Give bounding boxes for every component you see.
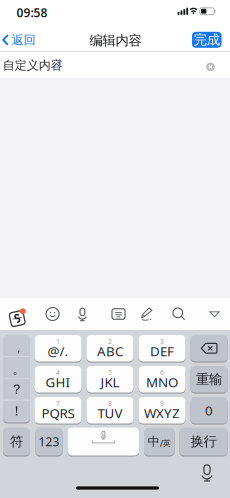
staticText: 自定义内容	[3, 58, 63, 73]
staticText: 2	[108, 337, 112, 346]
button[interactable]: 4	[34, 365, 81, 393]
button[interactable]: 0	[190, 396, 227, 424]
button[interactable]: 。	[3, 357, 30, 378]
staticText: 123	[38, 433, 59, 449]
staticText: DEF	[150, 342, 174, 360]
button[interactable]: 空格	[67, 427, 139, 456]
staticText: 换行	[190, 433, 216, 450]
button[interactable]: 8	[86, 396, 133, 424]
staticText: 7	[56, 399, 60, 408]
staticText: 英	[163, 438, 171, 448]
button[interactable]: 2	[86, 334, 133, 362]
button[interactable]: ？	[3, 379, 30, 400]
staticText: JKL	[100, 373, 119, 391]
staticText: 3	[160, 337, 164, 346]
staticText: 4	[56, 368, 60, 377]
button[interactable]: 搜狗	[8, 307, 28, 327]
button[interactable]: 重输	[190, 365, 227, 393]
staticText: PQRS	[41, 404, 74, 422]
button[interactable]: 表情	[46, 307, 59, 320]
staticText: 中	[148, 434, 160, 449]
button[interactable]: 5	[86, 365, 133, 393]
button[interactable]: 6	[138, 365, 185, 393]
staticText: /	[160, 437, 163, 449]
button[interactable]: 键盘	[112, 308, 125, 319]
button[interactable]: 中	[144, 427, 174, 456]
staticText: ？	[10, 381, 23, 397]
staticText: GHI	[45, 373, 70, 391]
button[interactable]: 1	[34, 334, 81, 362]
staticText: 9	[160, 399, 164, 408]
button[interactable]: 收起键盘	[209, 311, 220, 318]
staticText: 返回	[12, 33, 36, 47]
button[interactable]: 删除	[190, 334, 227, 362]
staticText: 0	[205, 401, 213, 419]
button[interactable]: 搜索	[172, 307, 185, 320]
button[interactable]: 听写	[200, 464, 214, 482]
staticText: 符	[10, 433, 23, 450]
button[interactable]: 换行	[179, 427, 227, 456]
staticText: WXYZ	[144, 404, 180, 422]
button[interactable]: 清除文本	[205, 62, 215, 72]
button[interactable]: 3	[138, 334, 185, 362]
staticText: ，	[12, 341, 24, 355]
staticText: 8	[108, 399, 112, 408]
staticText: TUV	[97, 404, 122, 422]
staticText: 5	[108, 368, 112, 377]
staticText: 重输	[196, 371, 222, 387]
button[interactable]: 123	[35, 427, 62, 456]
staticText: 完成	[194, 32, 220, 48]
button[interactable]: ！	[3, 401, 30, 422]
button[interactable]: 7	[34, 396, 81, 424]
staticText: 09:58	[16, 4, 47, 20]
button[interactable]: 语音	[77, 307, 88, 321]
button[interactable]: 返回	[2, 30, 36, 50]
staticText: @/.	[47, 342, 68, 360]
button[interactable]: 9	[138, 396, 185, 424]
staticText: ABC	[97, 342, 123, 360]
staticText: 6	[160, 368, 164, 377]
staticText: 。	[12, 362, 24, 377]
staticText: 编辑内容	[89, 32, 141, 49]
staticText: MNO	[146, 373, 178, 391]
button[interactable]: 符	[3, 427, 30, 456]
staticText: 1	[56, 337, 60, 346]
button[interactable]: 手写	[140, 307, 153, 321]
button[interactable]: 完成	[192, 32, 222, 48]
button[interactable]: ，	[3, 335, 30, 356]
staticText: ！	[10, 403, 23, 419]
